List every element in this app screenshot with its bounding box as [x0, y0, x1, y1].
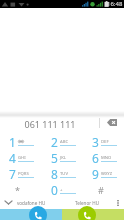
staticText: 16:48	[107, 0, 123, 8]
staticText: MNO	[101, 155, 112, 161]
staticText: Telenor HU	[75, 200, 100, 206]
staticText: +	[60, 187, 63, 193]
staticText: 5	[51, 150, 58, 166]
button[interactable]: #	[83, 180, 124, 196]
button[interactable]: More options	[112, 198, 124, 207]
staticText: WXYZ	[101, 171, 113, 177]
button[interactable]: 8	[42, 164, 83, 180]
staticText: PQRS	[18, 171, 29, 177]
staticText: 8	[51, 166, 58, 182]
button[interactable]: 5	[42, 148, 83, 164]
staticText: #	[98, 184, 104, 196]
staticText: *	[15, 184, 20, 196]
button[interactable]: Call with vodafone HU	[29, 206, 47, 220]
button[interactable]: 9	[83, 164, 124, 180]
button[interactable]: 7	[0, 164, 42, 180]
staticText: vodafone HU	[17, 200, 46, 206]
staticText: 1	[9, 134, 16, 150]
button[interactable]: 6	[83, 148, 124, 164]
staticText: GHI	[18, 155, 26, 161]
staticText: 061 111 111	[0, 118, 100, 130]
button[interactable]: 4	[0, 148, 42, 164]
staticText: 9	[92, 166, 99, 182]
staticText: TUV	[60, 171, 68, 177]
staticText: 7	[9, 166, 16, 182]
button[interactable]: *	[0, 180, 42, 196]
staticText: 2	[51, 134, 58, 150]
staticText: 0	[51, 182, 58, 198]
button[interactable]: 1	[0, 132, 42, 148]
button[interactable]: Call with Telenor HU	[78, 206, 96, 220]
button[interactable]: Backspace	[100, 116, 124, 129]
staticText: 6	[92, 150, 99, 166]
staticText: JKL	[60, 155, 66, 161]
button[interactable]: 2	[42, 132, 83, 148]
staticText: 3	[92, 134, 99, 150]
button[interactable]: 3	[83, 132, 124, 148]
staticText: DEF	[101, 139, 109, 145]
button[interactable]: 0	[42, 180, 83, 196]
staticText: ABC	[60, 139, 69, 145]
staticText: 4	[9, 150, 16, 166]
button[interactable]: Choose SIM	[0, 198, 17, 207]
